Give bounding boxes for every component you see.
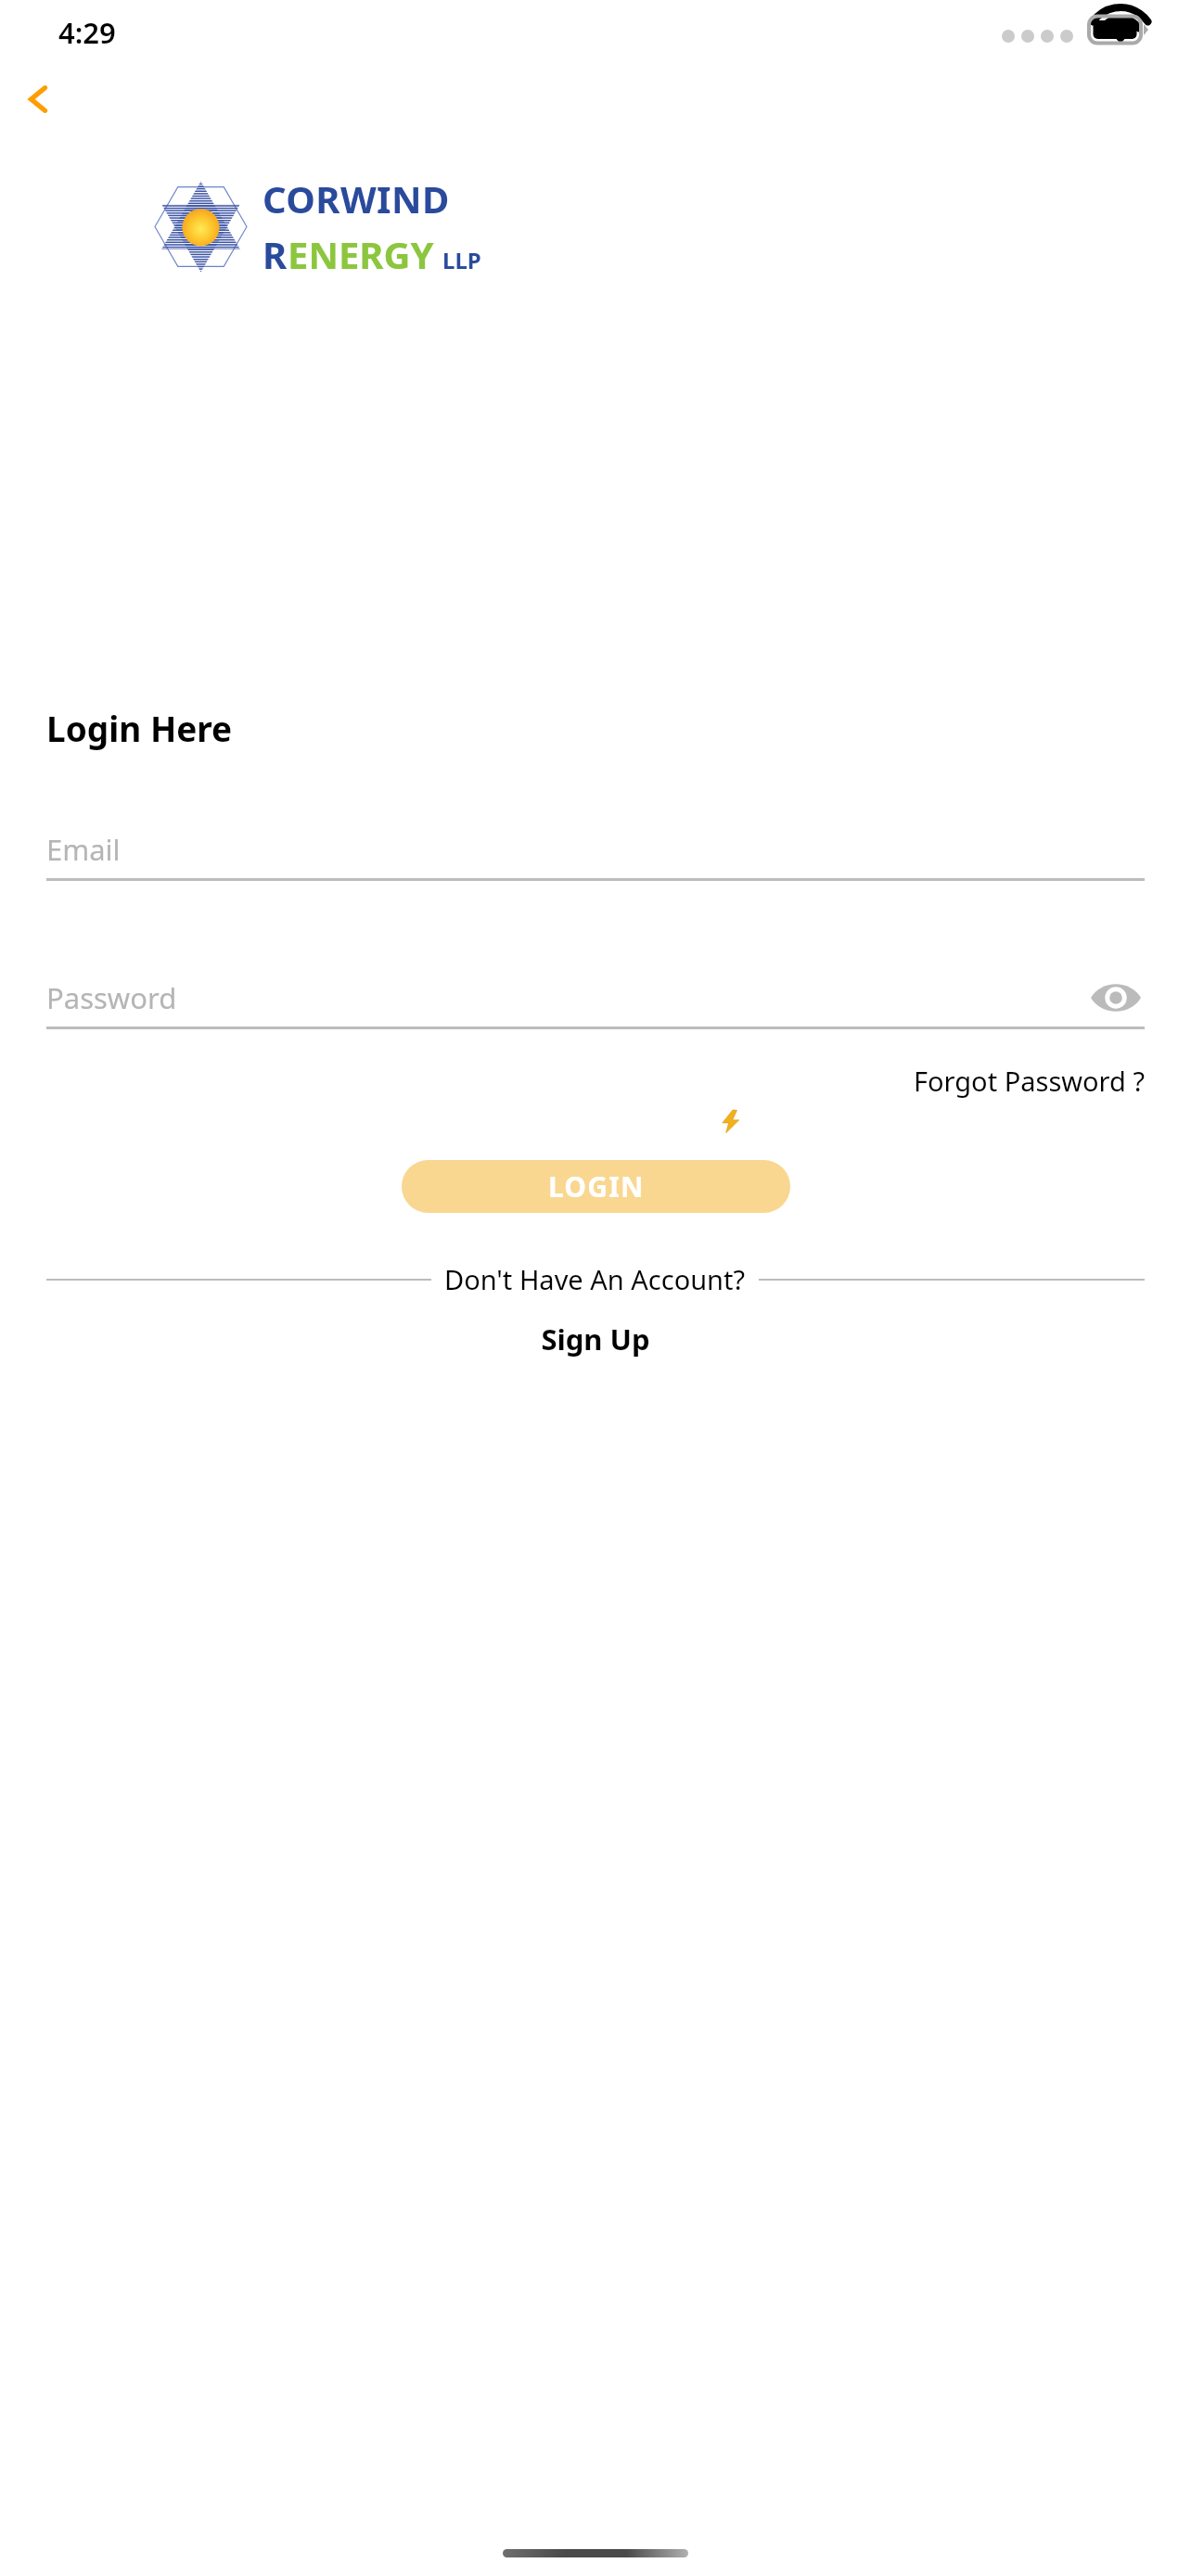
staticText: CORWIND <box>263 173 450 223</box>
staticText: LLP <box>442 245 481 275</box>
button[interactable]: Sign Up <box>522 1314 669 1364</box>
staticText: Password <box>46 978 1087 1017</box>
staticText: Email <box>46 830 121 869</box>
button[interactable]: Show password <box>1087 969 1145 1027</box>
staticText: R <box>263 229 288 279</box>
button[interactable]: Password <box>46 969 1145 1027</box>
staticText: Don't Have An Account? <box>444 1261 746 1297</box>
staticText: LOGIN <box>548 1167 645 1205</box>
button[interactable]: Email <box>46 821 1145 881</box>
staticText: 4:29 <box>58 13 116 52</box>
button[interactable]: LOGIN <box>402 1160 790 1213</box>
button[interactable]: Back <box>9 70 67 128</box>
staticText: ENERGY <box>288 229 434 279</box>
button[interactable]: Login Here <box>46 705 233 751</box>
button[interactable]: Forgot Password ? <box>914 1059 1145 1103</box>
